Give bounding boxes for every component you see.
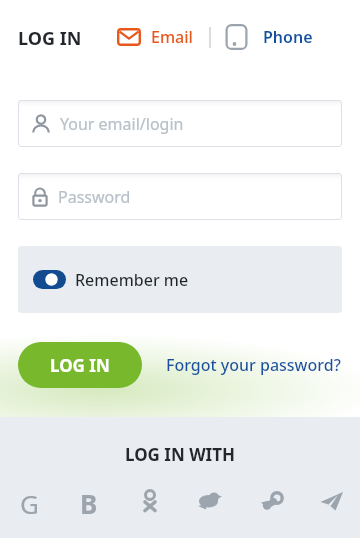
staticText: B — [80, 486, 98, 516]
button[interactable] — [318, 486, 344, 516]
staticText: Your email/login — [60, 113, 184, 135]
button[interactable]: Remember me — [18, 246, 342, 313]
staticText: G — [20, 486, 39, 516]
button[interactable]: G — [16, 486, 42, 516]
staticText: Forgot your password? — [166, 354, 341, 376]
button[interactable] — [137, 486, 163, 516]
button[interactable]: B — [76, 486, 102, 516]
staticText: Phone — [263, 26, 313, 48]
button[interactable]: Password — [18, 173, 342, 220]
staticText: Password — [58, 186, 131, 208]
button[interactable] — [197, 486, 223, 516]
button[interactable]: Forgot your password? — [160, 348, 347, 382]
staticText: Email — [151, 26, 193, 48]
staticText: LOG IN — [18, 26, 82, 51]
button[interactable]: LOG IN — [18, 342, 142, 388]
button[interactable]: Email — [117, 22, 193, 52]
staticText: LOG IN WITH — [0, 443, 360, 466]
staticText: Remember me — [75, 269, 189, 291]
button[interactable] — [258, 486, 284, 516]
button[interactable]: Your email/login — [18, 100, 342, 147]
staticText: LOG IN — [50, 354, 110, 377]
button[interactable]: Phone — [225, 22, 313, 52]
